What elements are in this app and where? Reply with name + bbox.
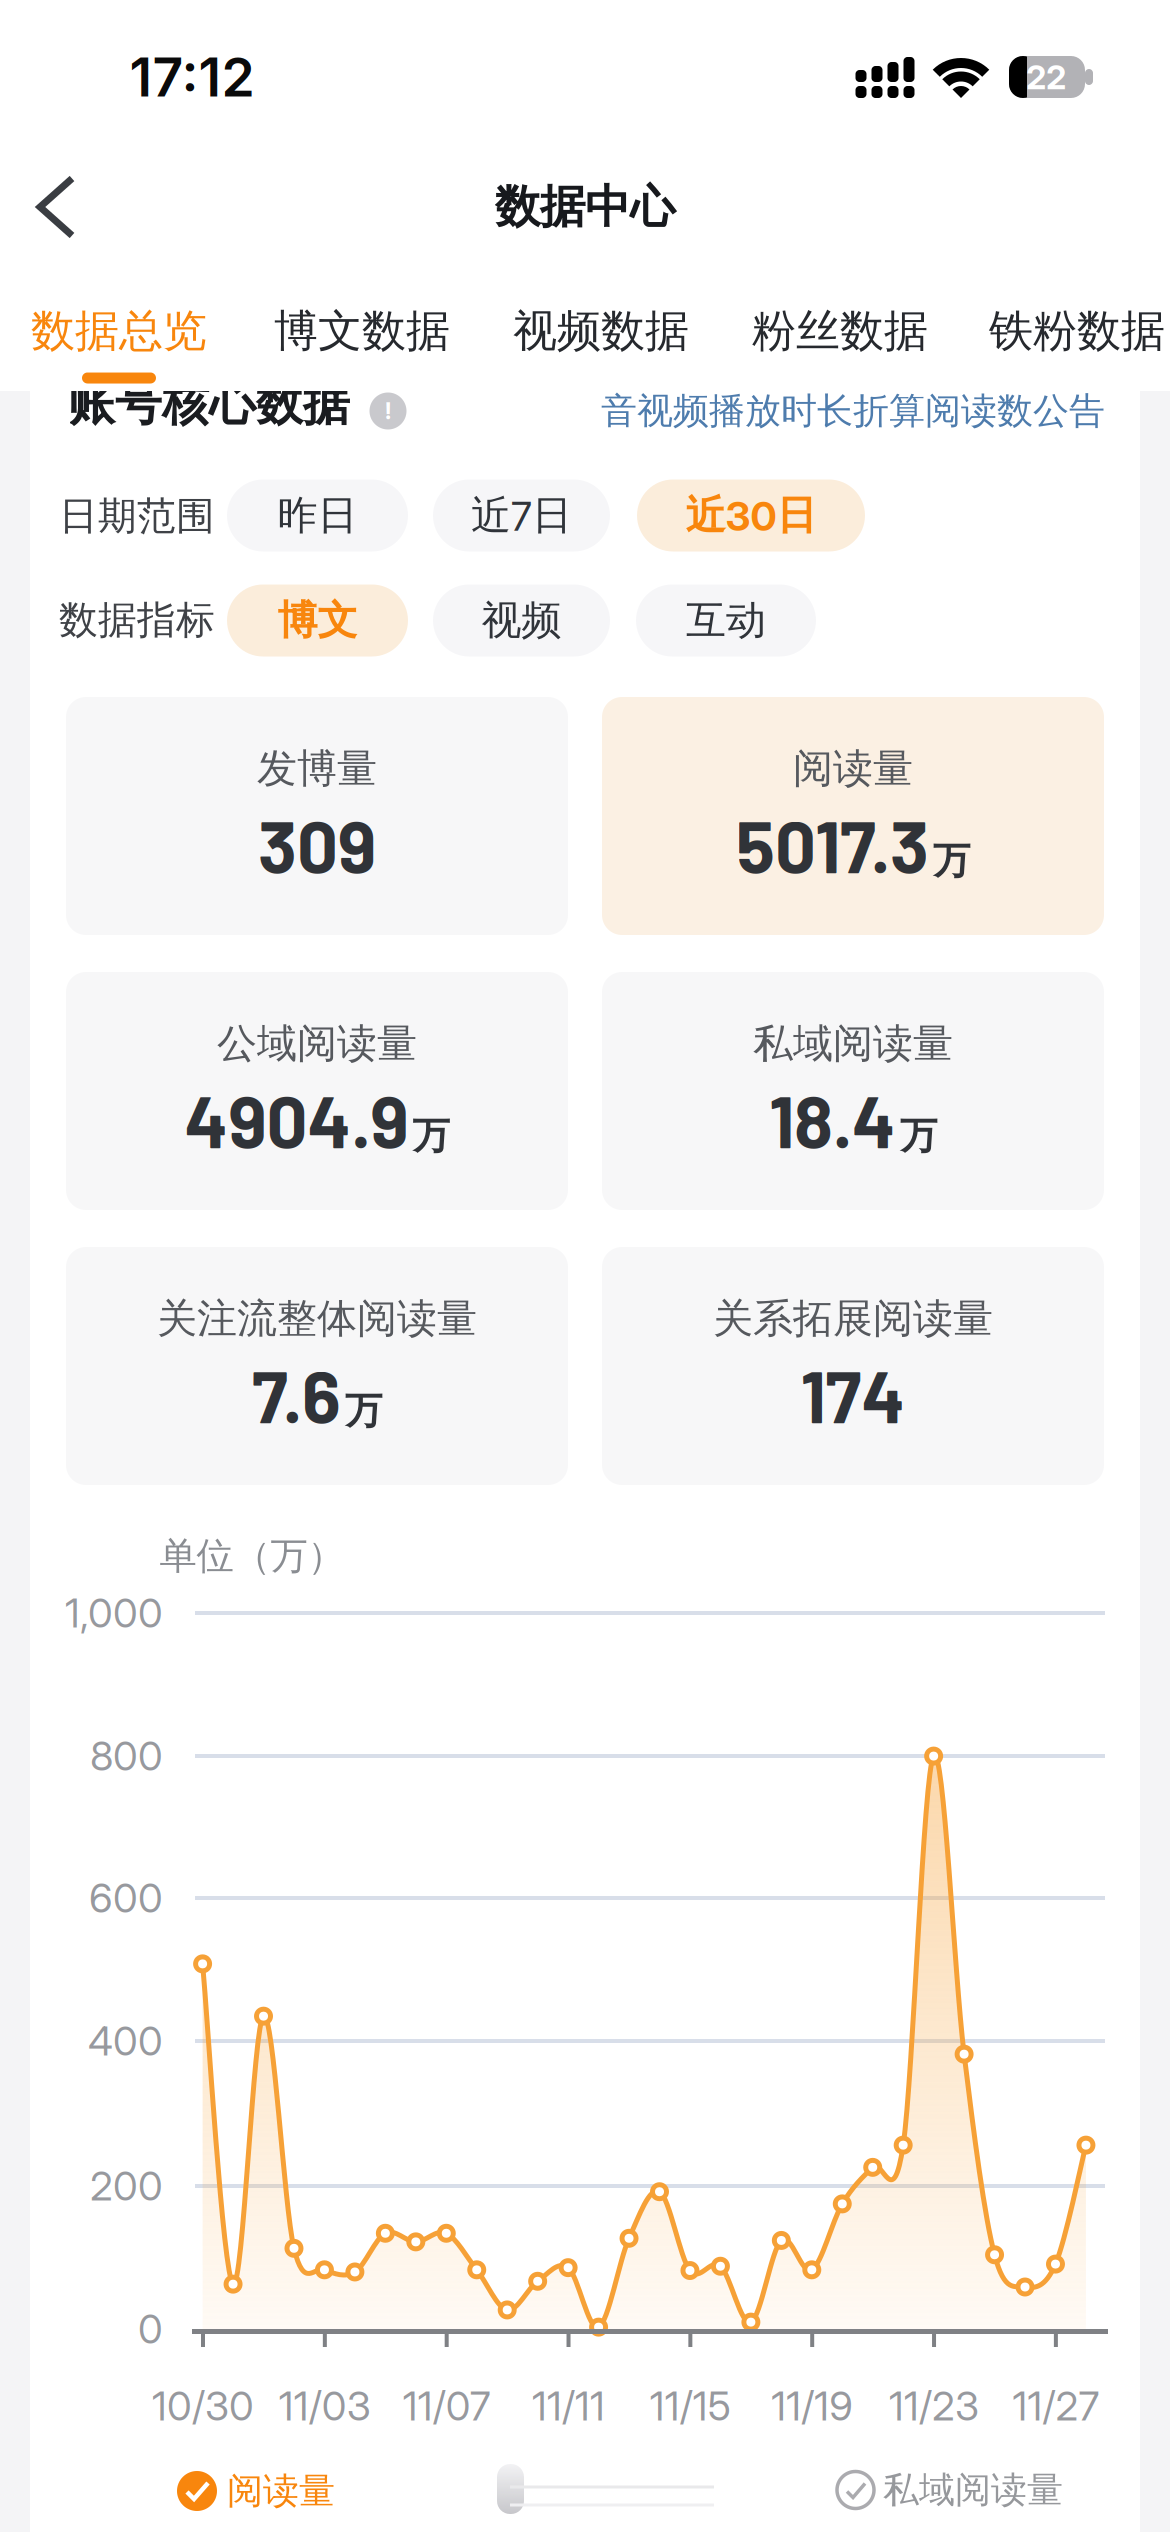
- staticText: 视频数据: [513, 304, 689, 358]
- staticText: 600: [89, 1874, 163, 1922]
- button[interactable]: 关注流整体阅读量: [66, 1247, 568, 1485]
- staticText: 11/07: [403, 2382, 491, 2430]
- staticText: 账号核心数据: [68, 375, 350, 433]
- button[interactable]: Back: [35, 175, 77, 239]
- staticText: 174: [800, 1351, 905, 1438]
- button[interactable]: 私域阅读量: [602, 972, 1104, 1210]
- staticText: 铁粉数据: [989, 304, 1165, 358]
- staticText: 万: [933, 838, 970, 884]
- staticText: 0: [138, 2305, 163, 2353]
- staticText: 11/11: [532, 2382, 605, 2430]
- button[interactable]: Info: [369, 392, 406, 429]
- button[interactable]: 铁粉数据: [989, 304, 1165, 358]
- staticText: 5017.3: [736, 801, 929, 888]
- button[interactable]: 近30日: [637, 479, 865, 551]
- button[interactable]: 博文数据: [274, 304, 450, 358]
- button[interactable]: 音视频播放时长折算阅读数公告: [601, 389, 1105, 433]
- button[interactable]: 数据总览: [31, 304, 207, 358]
- button[interactable]: 博文: [227, 584, 408, 656]
- staticText: 近7日: [471, 491, 572, 540]
- staticText: 800: [90, 1732, 163, 1780]
- staticText: 互动: [686, 596, 766, 645]
- staticText: 1,000: [65, 1589, 163, 1637]
- staticText: 400: [88, 2017, 163, 2065]
- staticText: 11/23: [889, 2382, 979, 2430]
- staticText: 22: [1026, 57, 1066, 97]
- staticText: 发博量: [257, 744, 377, 793]
- staticText: 粉丝数据: [752, 304, 928, 358]
- button[interactable]: 昨日: [227, 479, 408, 551]
- staticText: 近30日: [685, 491, 816, 540]
- staticText: 数据指标: [59, 596, 215, 644]
- button[interactable]: 发博量: [66, 697, 568, 935]
- staticText: 音视频播放时长折算阅读数公告: [601, 389, 1105, 433]
- staticText: 数据中心: [495, 179, 675, 235]
- staticText: !: [384, 398, 391, 424]
- button[interactable]: 粉丝数据: [752, 304, 928, 358]
- staticText: 11/15: [650, 2382, 731, 2430]
- staticText: 公域阅读量: [217, 1019, 417, 1068]
- staticText: 私域阅读量: [753, 1019, 953, 1068]
- button[interactable]: 近7日: [433, 479, 610, 551]
- staticText: 4904.9: [184, 1076, 408, 1163]
- button[interactable]: 互动: [636, 584, 816, 656]
- staticText: 阅读量: [227, 2469, 335, 2513]
- button[interactable]: 私域阅读量: [837, 2468, 1063, 2512]
- button[interactable]: 视频数据: [513, 304, 689, 358]
- button[interactable]: 阅读量: [602, 697, 1104, 935]
- staticText: 万: [345, 1388, 382, 1434]
- button[interactable]: 关系拓展阅读量: [602, 1247, 1104, 1485]
- staticText: 博文数据: [274, 304, 450, 358]
- staticText: 私域阅读量: [883, 2468, 1063, 2512]
- staticText: 关注流整体阅读量: [157, 1294, 477, 1343]
- staticText: 7.6: [252, 1351, 341, 1438]
- staticText: 数据总览: [31, 304, 207, 358]
- staticText: 309: [258, 801, 376, 888]
- staticText: 单位（万）: [159, 1533, 344, 1579]
- button[interactable]: 视频: [433, 584, 610, 656]
- staticText: 10/30: [152, 2382, 254, 2430]
- staticText: 18.4: [769, 1076, 896, 1163]
- button[interactable]: 公域阅读量: [66, 972, 568, 1210]
- staticText: 日期范围: [59, 492, 215, 540]
- staticText: 11/03: [279, 2382, 371, 2430]
- staticText: 万: [900, 1113, 937, 1159]
- staticText: 视频: [481, 596, 561, 645]
- staticText: 昨日: [277, 491, 357, 540]
- staticText: 博文: [277, 596, 357, 645]
- staticText: 17:12: [129, 45, 254, 108]
- staticText: 11/19: [771, 2382, 853, 2430]
- staticText: 万: [412, 1113, 449, 1159]
- staticText: 11/27: [1012, 2382, 1099, 2430]
- staticText: 关系拓展阅读量: [713, 1294, 993, 1343]
- button[interactable]: 阅读量: [177, 2469, 335, 2513]
- staticText: 200: [90, 2162, 163, 2210]
- staticText: 阅读量: [793, 744, 913, 793]
